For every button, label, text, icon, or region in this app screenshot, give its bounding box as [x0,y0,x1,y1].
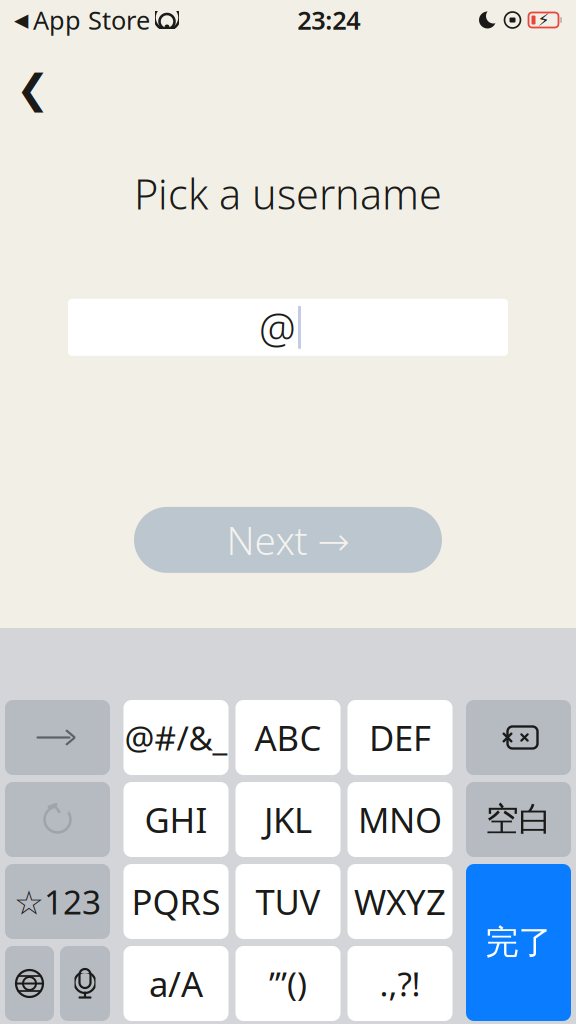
button[interactable]: GHI [123,782,228,857]
staticText: Pick a username [134,166,442,221]
button[interactable]: .,?! [347,946,452,1021]
button[interactable]: Next → [134,507,442,573]
staticText: 23:24 [297,3,360,37]
button[interactable]: 完了 [466,864,571,1021]
button[interactable]: @#/&_ [123,700,228,775]
staticText: PQRS [131,878,220,924]
staticText: 完了 [485,922,551,963]
staticText: ☆123 [14,879,101,924]
staticText: ABC [254,714,321,760]
staticText: App Store [33,3,150,37]
staticText: a/A [149,960,203,1006]
staticText: @#/&_ [124,715,227,760]
button[interactable]: Delete [466,700,571,775]
button[interactable]: ’”() [235,946,340,1021]
button[interactable]: Next field [5,700,110,775]
button[interactable]: ABC [235,700,340,775]
staticText: ◀ [14,9,28,31]
button[interactable]: Change keyboard [5,946,54,1021]
button[interactable]: Undo [5,782,110,857]
staticText: MNO [358,796,442,842]
staticText: ❮ [16,66,50,112]
staticText: Next → [226,514,349,565]
staticText: JKL [264,796,312,842]
staticText: TUV [255,878,320,924]
button[interactable]: a/A [123,946,228,1021]
staticText: 空白 [485,799,551,840]
staticText: ⚡︎ [537,10,549,30]
button[interactable]: WXYZ [347,864,452,939]
button[interactable]: Dictation [60,946,110,1021]
button[interactable]: TUV [235,864,340,939]
button[interactable]: ☆123 [5,864,110,939]
staticText: .,?! [379,961,420,1006]
staticText: DEF [369,714,431,760]
button[interactable]: Back [4,62,62,116]
button[interactable]: DEF [347,700,452,775]
button[interactable]: MNO [347,782,452,857]
button[interactable]: 空白 [466,782,571,857]
staticText: GHI [144,796,207,842]
staticText: WXYZ [354,878,446,924]
staticText: @ [259,300,296,355]
button[interactable]: @ [68,299,508,356]
button[interactable]: JKL [235,782,340,857]
staticText: ’”() [269,961,307,1006]
button[interactable]: PQRS [123,864,228,939]
